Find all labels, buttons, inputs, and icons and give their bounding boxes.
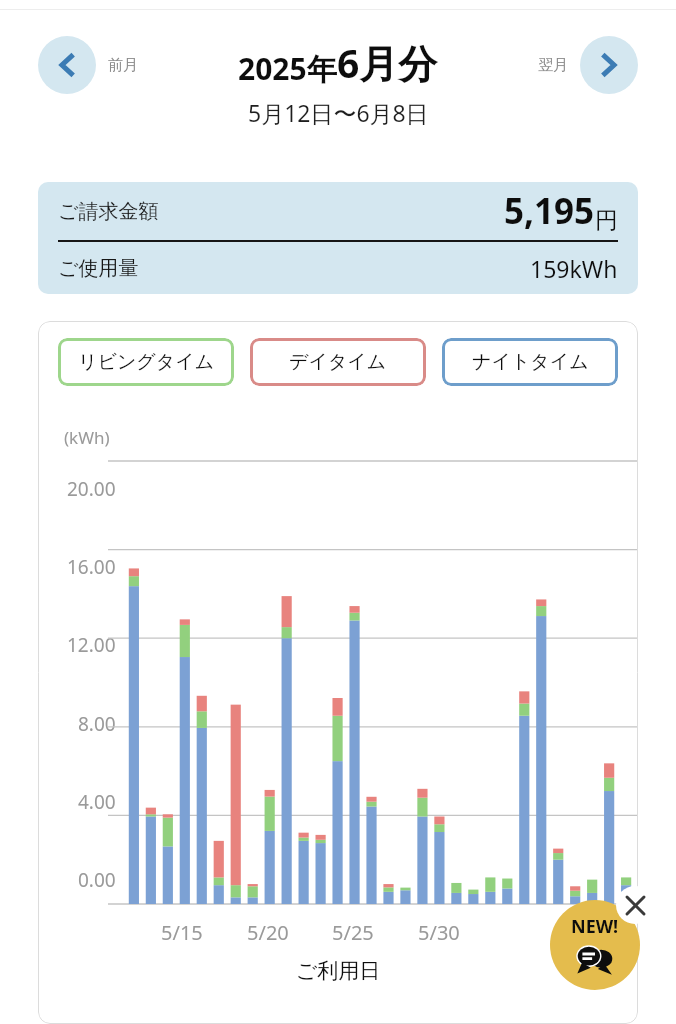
staticText: 5/30 xyxy=(418,919,460,946)
staticText: 5月12日〜6月8日 xyxy=(248,97,429,128)
staticText: NEW! xyxy=(571,914,619,939)
staticText: 6月分 xyxy=(337,36,438,89)
staticText: デイタイム xyxy=(289,350,387,374)
staticText: 5/25 xyxy=(332,919,374,946)
staticText: 16.00 xyxy=(67,554,116,580)
button[interactable]: 翌月 xyxy=(538,36,638,94)
staticText: 5/20 xyxy=(247,919,289,946)
button[interactable]: デイタイム xyxy=(250,338,426,386)
staticText: ご使用量 xyxy=(58,256,139,281)
staticText: 159kWh xyxy=(530,253,618,284)
button[interactable]: リビングタイム xyxy=(58,338,234,386)
staticText: 2025年 xyxy=(238,48,337,89)
button[interactable]: 新着メッセージ xyxy=(550,900,640,990)
staticText: 0.00 xyxy=(78,867,116,893)
staticText: リビングタイム xyxy=(78,350,215,374)
staticText: 20.00 xyxy=(67,476,116,502)
staticText: 8.00 xyxy=(78,711,116,737)
staticText: 5,195 xyxy=(504,187,595,235)
button[interactable]: 前月 xyxy=(38,36,138,94)
staticText: ナイトタイム xyxy=(472,350,589,374)
staticText: 円 xyxy=(595,206,618,235)
staticText: 前月 xyxy=(108,56,138,75)
button[interactable]: ご請求金額 xyxy=(38,182,638,294)
staticText: 翌月 xyxy=(538,56,568,75)
staticText: 4.00 xyxy=(78,789,116,815)
staticText: ご請求金額 xyxy=(58,199,159,224)
staticText: (kWh) xyxy=(64,426,110,449)
button[interactable]: 閉じる xyxy=(616,886,654,924)
staticText: ご利用日 xyxy=(38,958,638,984)
staticText: 12.00 xyxy=(67,632,116,658)
button[interactable]: ナイトタイム xyxy=(442,338,618,386)
staticText: 5/15 xyxy=(161,919,203,946)
